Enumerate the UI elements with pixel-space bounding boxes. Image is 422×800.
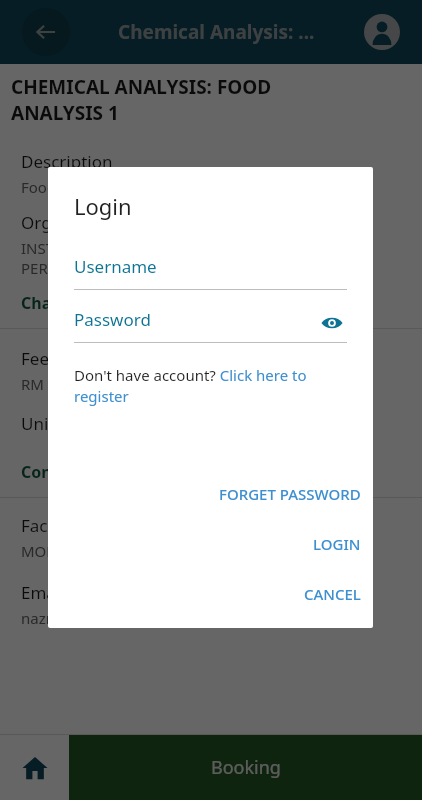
button[interactable]: CANCEL xyxy=(292,580,373,608)
button[interactable]: Don't have account? Click here to regist… xyxy=(74,365,347,407)
staticText: RM 50.00 xyxy=(21,374,87,394)
button[interactable]: Account xyxy=(360,10,404,54)
button[interactable]: LOGIN xyxy=(301,530,373,558)
staticText: Email xyxy=(21,581,65,604)
staticText: Login xyxy=(74,191,132,221)
staticText: Booking xyxy=(211,755,281,780)
button[interactable]: Booking xyxy=(69,735,422,800)
staticText: Password xyxy=(74,308,151,331)
staticText: INSTITUT PENYELIDIKAN DAN PERTANIAN MALA… xyxy=(21,238,232,278)
staticText: MOHD NAZRUL HISHAM BIN DAUD xyxy=(21,541,269,561)
staticText: CHEMICAL ANALYSIS: FOOD ANALYSIS 1 xyxy=(11,74,272,126)
staticText: Username xyxy=(74,255,157,278)
staticText: Description xyxy=(21,150,113,173)
staticText: Chemical Analysis: ... xyxy=(118,19,315,45)
staticText: Food Analysis 1 xyxy=(21,177,130,197)
staticText: Fee xyxy=(21,347,49,370)
button[interactable]: Show password xyxy=(317,308,347,338)
staticText: Contact xyxy=(21,461,84,483)
staticText: Charges xyxy=(21,292,86,314)
staticText: LOGIN xyxy=(313,534,361,554)
staticText: Organization xyxy=(21,211,125,234)
staticText: nazrul@mardi.gov.my xyxy=(21,608,175,628)
staticText: CANCEL xyxy=(304,584,361,604)
button[interactable]: Password xyxy=(74,308,347,343)
button[interactable]: Back xyxy=(22,8,70,56)
staticText: FORGET PASSWORD xyxy=(219,484,361,504)
button[interactable]: FORGET PASSWORD xyxy=(207,480,373,508)
staticText: Facilitator xyxy=(21,514,100,537)
button[interactable]: Username xyxy=(74,255,347,290)
staticText: Unit xyxy=(21,412,55,435)
button[interactable]: Home xyxy=(0,735,69,800)
